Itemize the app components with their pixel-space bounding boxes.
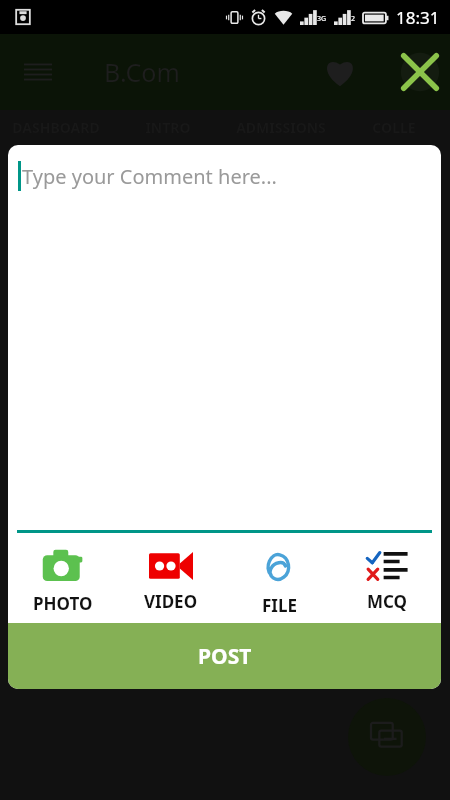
staticText: 18:31 xyxy=(396,6,440,29)
staticText: B.Com xyxy=(104,55,180,89)
button[interactable]: VIDEO xyxy=(117,544,225,613)
staticText: PHOTO xyxy=(33,592,93,615)
button[interactable]: Comments xyxy=(348,698,426,776)
staticText: POST xyxy=(198,642,252,671)
staticText: 2 xyxy=(351,14,356,24)
button[interactable]: FILE xyxy=(225,540,333,617)
button[interactable]: PHOTO xyxy=(8,542,117,615)
button[interactable]: POST xyxy=(8,623,441,689)
staticText: 3G xyxy=(317,14,327,24)
staticText: MCQ xyxy=(367,590,408,613)
staticText: VIDEO xyxy=(144,590,198,613)
staticText: FILE xyxy=(262,594,297,617)
button[interactable]: Close xyxy=(394,46,446,98)
button[interactable]: Favorite xyxy=(318,50,362,94)
button[interactable]: Type your Comment here... xyxy=(8,145,441,530)
staticText: Type your Comment here... xyxy=(22,163,277,190)
button[interactable]: MCQ xyxy=(333,544,441,613)
button[interactable]: Menu xyxy=(22,56,54,88)
